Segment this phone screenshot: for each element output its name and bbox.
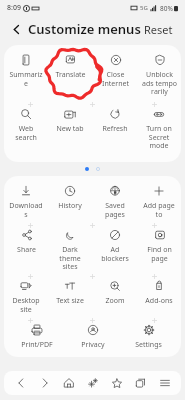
staticText: Download s [9,201,43,219]
button[interactable]: Add page to [142,184,176,219]
staticText: Web search [15,124,37,142]
button[interactable]: Unblock ads tempo rarily [141,53,178,96]
staticText: Customize menus [28,20,141,38]
button[interactable]: Saved pages [104,184,126,219]
button[interactable]: Home [58,372,79,394]
button[interactable]: Summariz e [8,53,44,88]
staticText: Find on page [147,245,172,263]
staticText: Add-ons [145,296,173,306]
staticText: Ad blockers [101,245,129,263]
staticText: Turn on Secret mode [146,124,172,150]
staticText: Privacy [81,340,105,350]
staticText: Share [17,245,36,255]
button[interactable]: Download s [8,184,44,219]
button[interactable]: Desktop site [11,279,41,314]
staticText: Translate [55,70,86,80]
staticText: Text size [56,296,84,306]
staticText: Reset [144,22,173,37]
staticText: Unblock ads tempo rarily [142,70,177,96]
staticText: Settings [135,340,162,350]
button[interactable]: Web search [14,107,38,142]
button[interactable]: Bookmarks [106,372,127,394]
button[interactable]: History [57,184,83,211]
button[interactable]: Find on page [146,228,173,263]
button[interactable]: New tab [55,107,85,134]
staticText: 8:09 [7,3,21,13]
button[interactable]: Print/PDF [20,323,54,350]
staticText: Print/PDF [21,340,53,350]
staticText: Summariz e [9,70,43,88]
staticText: 80% [160,4,173,13]
button[interactable]: Reset [142,20,175,39]
staticText: Refresh [102,124,128,134]
staticText: Close Internet [102,70,129,88]
button[interactable]: Zoom [104,279,126,306]
button[interactable]: Forward [34,372,55,394]
button[interactable]: Settings [134,323,163,350]
staticText: Add page to [143,201,175,219]
button[interactable]: Menu [154,372,175,394]
button[interactable]: Close Internet [101,53,130,88]
button[interactable]: Back [8,21,24,37]
staticText: History [58,201,82,211]
staticText: New tab [56,124,84,134]
button[interactable]: Dark theme sites [58,228,82,271]
button[interactable]: Back [10,372,31,394]
button[interactable]: Turn on Secret mode [145,107,173,150]
button[interactable]: Assistant [82,372,103,394]
button[interactable]: Privacy [80,323,106,350]
button[interactable]: Translate [54,53,87,80]
button[interactable]: Refresh [101,107,129,134]
button[interactable]: Text size [55,279,85,306]
staticText: Dark theme sites [59,245,81,271]
button[interactable]: Share [16,228,37,255]
button[interactable]: Tabs [130,372,151,394]
staticText: Zoom [105,296,125,306]
staticText: Saved pages [105,201,125,219]
staticText: Desktop site [12,296,40,314]
button[interactable]: Add-ons [144,279,174,306]
staticText: 5G [140,4,148,12]
button[interactable]: Ad blockers [100,228,130,263]
